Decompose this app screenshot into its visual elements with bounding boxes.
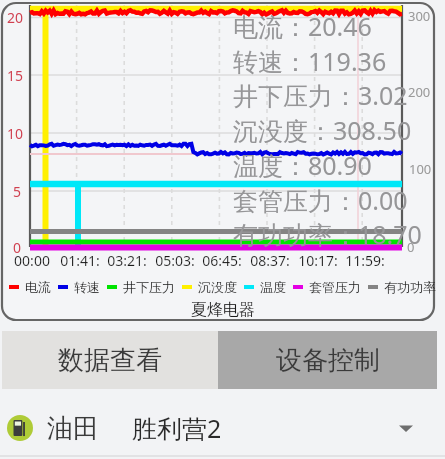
staticText: 10: [7, 124, 24, 143]
staticText: 有功功率：18.70: [233, 217, 422, 251]
staticText: 300: [408, 7, 431, 25]
staticText: 00:00: [12, 251, 52, 270]
staticText: 电流: [25, 279, 51, 295]
staticText: 设备控制: [276, 344, 380, 377]
staticText: 沉没度：308.50: [233, 113, 412, 147]
staticText: 01:41:: [60, 251, 100, 270]
staticText: 20: [7, 8, 24, 27]
staticText: 08:37:: [250, 251, 290, 270]
staticText: 温度: [260, 279, 286, 295]
staticText: 11:59:: [345, 251, 385, 270]
staticText: 电流：20.46: [233, 9, 372, 43]
staticText: 温度：80.90: [233, 148, 372, 182]
staticText: 06:45:: [202, 251, 242, 270]
staticText: 井下压力：3.02: [233, 78, 408, 112]
staticText: 数据查看: [58, 344, 162, 377]
staticText: 转速: [74, 279, 100, 295]
staticText: 夏烽电器: [191, 300, 255, 320]
staticText: 0: [407, 238, 415, 256]
staticText: 井下压力: [123, 279, 175, 295]
other: Oil field: [7, 415, 33, 441]
staticText: 200: [408, 83, 431, 101]
staticText: 15: [7, 66, 24, 85]
staticText: 胜利营2: [132, 411, 222, 445]
staticText: 套管压力：0.00: [233, 183, 408, 217]
staticText: 沉没度: [198, 279, 237, 295]
staticText: 套管压力: [309, 279, 361, 295]
staticText: 10:17:: [298, 251, 338, 270]
staticText: 05:03:: [155, 251, 195, 270]
button[interactable]: 设备控制: [218, 331, 437, 389]
staticText: 03:21:: [107, 251, 147, 270]
staticText: 0: [13, 238, 22, 257]
other: Select well: [389, 411, 423, 445]
staticText: 有功功率: [384, 279, 436, 295]
staticText: 转速：119.36: [233, 44, 387, 78]
staticText: 100: [409, 160, 432, 178]
staticText: 5: [13, 182, 22, 201]
staticText: 油田: [47, 412, 99, 445]
button[interactable]: Oil field: [0, 400, 445, 456]
button[interactable]: 数据查看: [2, 331, 218, 389]
